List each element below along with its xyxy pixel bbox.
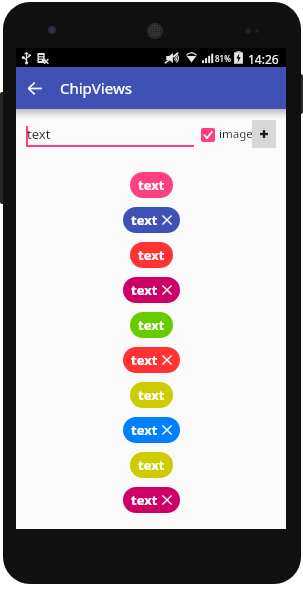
button[interactable]: text: [123, 207, 180, 233]
staticText: text: [138, 246, 165, 264]
button[interactable]: text: [130, 172, 173, 198]
button[interactable]: Back: [23, 76, 47, 100]
button[interactable]: Add: [252, 120, 276, 148]
staticText: 14:26: [248, 51, 279, 67]
staticText: text: [27, 125, 51, 143]
button[interactable]: text: [26, 119, 194, 147]
staticText: text: [138, 386, 165, 404]
button[interactable]: text: [130, 242, 173, 268]
staticText: text: [138, 176, 165, 194]
staticText: text: [131, 351, 158, 369]
button[interactable]: text: [130, 312, 173, 338]
staticText: text: [131, 491, 158, 509]
button[interactable]: text: [130, 382, 173, 408]
staticText: text: [138, 316, 165, 334]
staticText: image: [219, 126, 253, 142]
staticText: 81%: [215, 53, 231, 64]
staticText: text: [131, 421, 158, 439]
staticText: text: [131, 281, 158, 299]
button[interactable]: text: [123, 487, 180, 513]
button[interactable]: text: [130, 452, 173, 478]
staticText: ChipViews: [60, 78, 132, 98]
staticText: text: [131, 211, 158, 229]
button[interactable]: text: [123, 347, 180, 373]
button[interactable]: text: [123, 417, 180, 443]
staticText: text: [138, 456, 165, 474]
button[interactable]: text: [123, 277, 180, 303]
button[interactable]: image checkbox: [201, 128, 215, 142]
